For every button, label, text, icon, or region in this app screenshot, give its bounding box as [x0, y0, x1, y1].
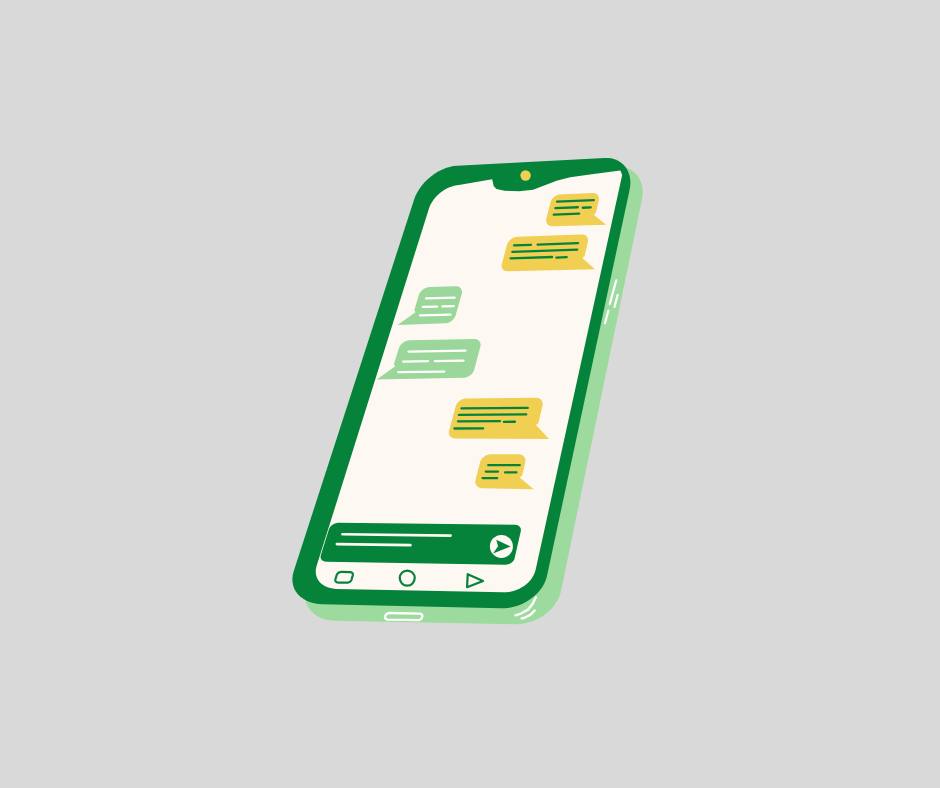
button[interactable]: Recent apps — [456, 568, 492, 594]
button[interactable]: Home — [390, 567, 425, 591]
button[interactable]: Message bubble — [376, 338, 480, 381]
button[interactable]: Message input field — [319, 523, 522, 565]
button[interactable]: Message bubble — [544, 192, 614, 229]
button[interactable]: Back — [326, 566, 362, 590]
button[interactable]: Message bubble — [446, 396, 559, 441]
button[interactable]: Message bubble — [396, 287, 463, 327]
button[interactable]: Message bubble — [500, 234, 603, 275]
button[interactable]: Message bubble — [472, 455, 543, 492]
button[interactable]: Send message — [485, 534, 519, 560]
